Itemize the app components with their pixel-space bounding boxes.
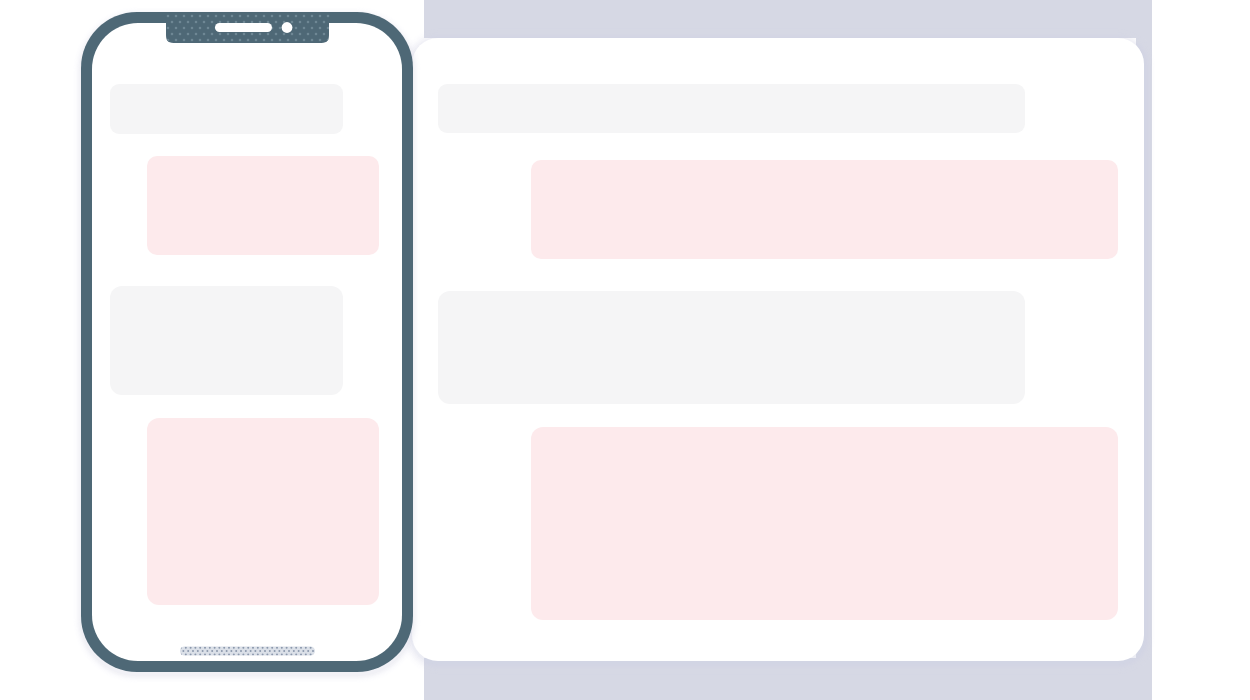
button[interactable]: Phone neutral card — [0, 0, 1250, 700]
button[interactable]: Phone highlighted card one — [0, 0, 1250, 700]
button[interactable]: Tablet highlighted card two — [0, 0, 1250, 700]
button[interactable]: Phone preview device — [0, 0, 1250, 700]
button[interactable]: Tablet header placeholder — [0, 0, 1250, 700]
button[interactable]: Tablet preview panel — [0, 0, 1250, 700]
button[interactable]: Phone home indicator — [0, 0, 1250, 700]
button[interactable]: Tablet neutral card — [0, 0, 1250, 700]
button[interactable]: Phone highlighted card two — [0, 0, 1250, 700]
button[interactable]: Tablet highlighted card one — [0, 0, 1250, 700]
button[interactable]: Phone header placeholder — [0, 0, 1250, 700]
